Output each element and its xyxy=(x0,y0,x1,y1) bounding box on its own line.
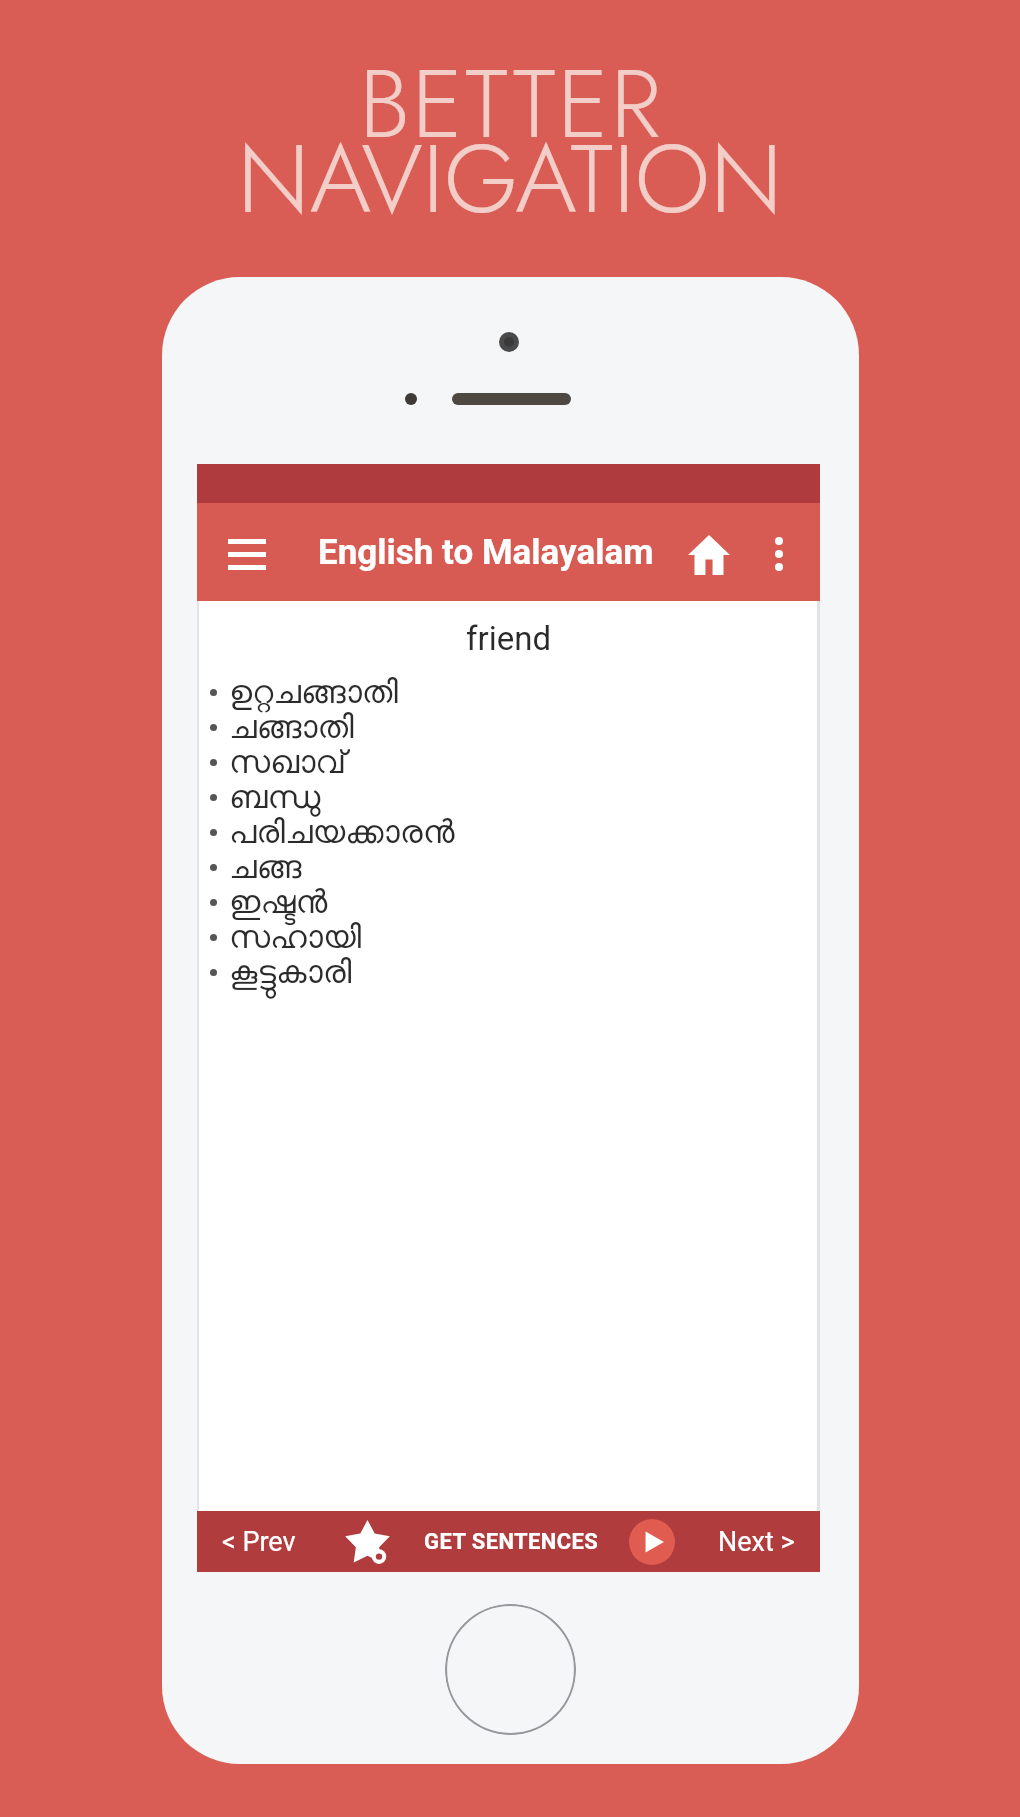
staticText: GET SENTENCES xyxy=(424,1529,599,1555)
button[interactable]: ചങ്ങ xyxy=(197,850,820,885)
button[interactable]: Home button xyxy=(445,1604,576,1735)
staticText: friend xyxy=(197,619,820,658)
button[interactable]: < Prev xyxy=(210,1511,308,1572)
button[interactable]: Add to favourites xyxy=(339,1514,395,1570)
staticText: English to Malayalam xyxy=(318,532,654,573)
button[interactable]: GET SENTENCES xyxy=(412,1511,611,1572)
staticText: NAVIGATION xyxy=(237,109,783,248)
button[interactable]: കൂട്ടുകാരി xyxy=(197,955,820,990)
button[interactable]: Open navigation menu xyxy=(218,525,276,583)
button[interactable]: സഖാവ് xyxy=(197,745,820,780)
staticText: സഖാവ് xyxy=(229,747,347,779)
staticText: BETTER xyxy=(359,34,662,173)
staticText: ചങ്ങാതി xyxy=(229,712,354,744)
button[interactable]: ഇഷ്ടൻ xyxy=(197,885,820,920)
staticText: ബന്ധു xyxy=(229,782,321,814)
button[interactable]: ഉറ്റചങ്ങാതി xyxy=(197,675,820,710)
staticText: ചങ്ങ xyxy=(229,852,302,884)
button[interactable]: സഹായി xyxy=(197,920,820,955)
button[interactable]: Next > xyxy=(706,1511,807,1572)
button[interactable]: ചങ്ങാതി xyxy=(197,710,820,745)
staticText: സഹായി xyxy=(229,922,362,954)
staticText: ഉറ്റചങ്ങാതി xyxy=(229,677,399,709)
staticText: കൂട്ടുകാരി xyxy=(229,957,352,989)
staticText: പരിചയക്കാരൻ xyxy=(229,817,455,849)
button[interactable]: Home xyxy=(680,526,738,584)
staticText: ഇഷ്ടൻ xyxy=(229,887,328,919)
button[interactable]: പരിചയക്കാരൻ xyxy=(197,815,820,850)
staticText: Next > xyxy=(718,1526,795,1558)
button[interactable]: Play pronunciation xyxy=(624,1514,680,1570)
button[interactable]: ബന്ധു xyxy=(197,780,820,815)
button[interactable]: More options xyxy=(753,528,805,580)
staticText: < Prev xyxy=(222,1526,296,1558)
